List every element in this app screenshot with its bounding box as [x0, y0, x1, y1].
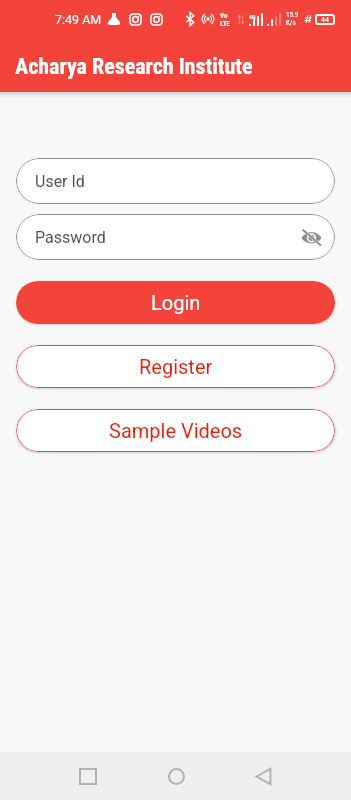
button[interactable]: Register [16, 345, 335, 388]
staticText: 7:49 AM [55, 12, 102, 27]
staticText: User Id [35, 172, 85, 191]
button[interactable]: Back [241, 754, 285, 798]
button[interactable]: Home [154, 754, 198, 798]
staticText: Vo LTE [220, 12, 230, 27]
staticText: Sample Videos [109, 419, 243, 442]
staticText: 4G [249, 13, 256, 20]
button[interactable]: Recents [66, 754, 110, 798]
staticText: Login [151, 291, 201, 314]
staticText: Acharya Research Institute [15, 54, 253, 80]
button[interactable]: Sample Videos [16, 409, 335, 452]
button[interactable]: User Id [16, 158, 335, 204]
staticText: Register [139, 355, 213, 378]
button[interactable]: Login [16, 281, 335, 324]
staticText: 15.9 K/s [286, 11, 299, 27]
staticText: 44 [321, 15, 329, 24]
button[interactable]: Password [16, 214, 335, 260]
button[interactable]: Show password [299, 225, 323, 249]
staticText: Password [35, 228, 106, 247]
